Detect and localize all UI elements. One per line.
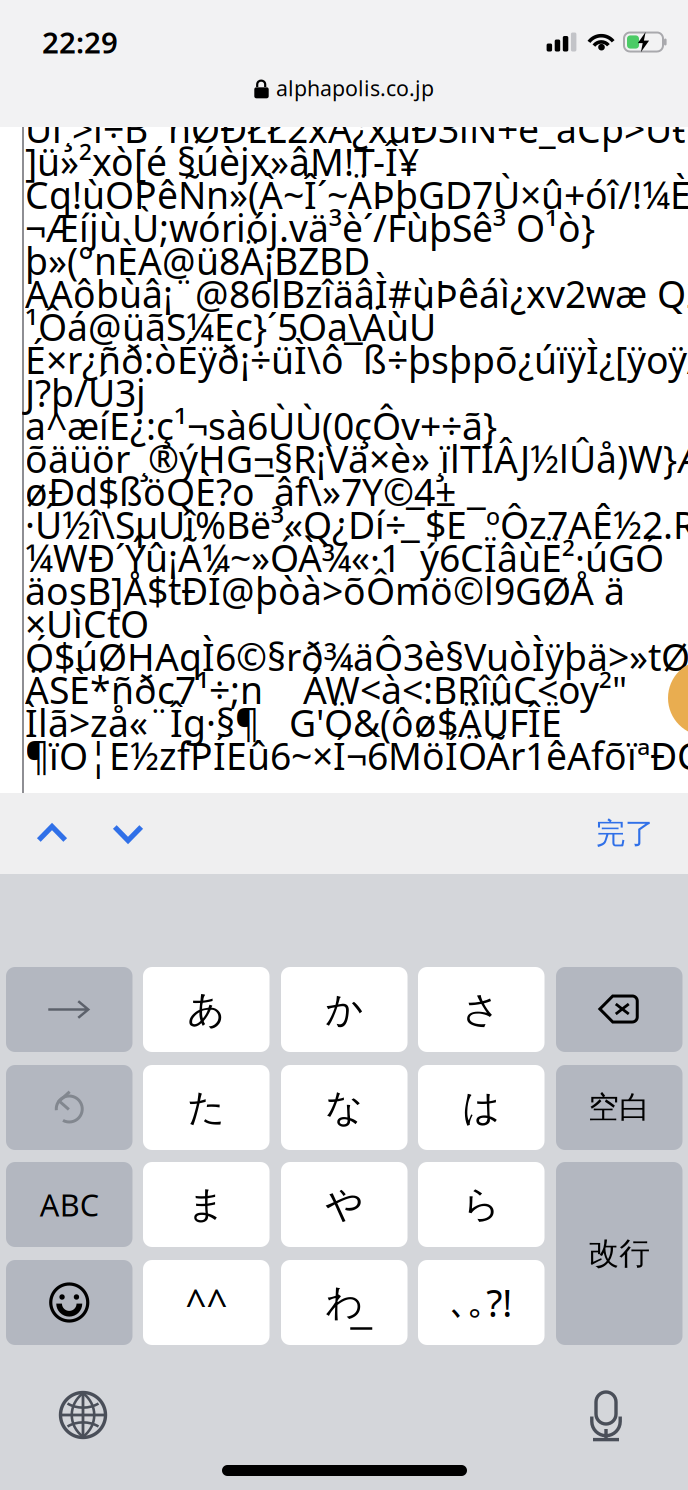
staticText: ､: [450, 1286, 467, 1319]
staticText: や: [325, 1182, 363, 1227]
button[interactable]: Next field: [90, 793, 166, 873]
staticText: ¼WÐ´Ýû¡Ã¼~»ÓÀ¾«·1¯ý6CÏâùË²·úGÓ: [25, 533, 664, 582]
staticText: わ: [325, 1280, 363, 1325]
staticText: た: [187, 1085, 225, 1130]
button[interactable]: ま: [143, 1162, 269, 1247]
staticText: õäüör ¸®ýHG¬§R¡Vä×è» ̧ïlTIÂJ½lÛå)W}ÆV¡ =: [25, 434, 688, 483]
staticText: ¬Æíjù Ù;wóriój.vä³è´/FùþSê³ O¹ò}: [25, 203, 595, 252]
staticText: ABC: [40, 1184, 99, 1225]
staticText: 22:29: [42, 22, 118, 61]
button[interactable]: ら: [418, 1162, 544, 1247]
button[interactable]: 空白: [556, 1065, 682, 1150]
button[interactable]: ABC: [6, 1162, 132, 1247]
button[interactable]: ^^: [143, 1260, 269, 1345]
staticText: あ: [187, 987, 225, 1032]
staticText: な: [325, 1085, 363, 1130]
staticText: ]ü»²xò[é §úèjx»âM!T-Î¥: [25, 137, 419, 186]
button[interactable]: Delete: [556, 967, 682, 1052]
staticText: ×UìCtO: [25, 599, 149, 648]
button[interactable]: Next candidate: [6, 967, 132, 1052]
button[interactable]: か: [281, 967, 407, 1052]
staticText: は: [462, 1085, 500, 1130]
button[interactable]: Switch keyboard: [60, 1392, 106, 1438]
staticText: ¶ïO¦E½zfPÍEû6~×Í¬6MöÍÖÃr1êAfõïªÐCxvFú3©: [25, 731, 688, 780]
button[interactable]: な: [281, 1065, 407, 1150]
button[interactable]: わ: [281, 1260, 407, 1345]
staticText: ら: [462, 1182, 500, 1227]
staticText: a^æíE¿:ç¹¬sà6ÙÙ(0çÔv+÷ã}: [25, 401, 497, 450]
staticText: É×r¿ñð:òÉÿð¡÷üÌ\ô¯ß÷þsþpõ¿úïÿÌ¿[ÿoÿÀûg~û: [25, 335, 688, 384]
button[interactable]: さ: [418, 967, 544, 1052]
staticText: さ: [462, 987, 500, 1032]
staticText: ·Ú½î\SµUî%Bë³«Q¿Dí÷¯$E¯ºÔz7AÊ½2.R}áF #: [25, 500, 688, 549]
staticText: ま: [187, 1182, 225, 1227]
staticText: øÐd$ßöQÈ?o¯âf\»7Y©4±: [25, 467, 456, 516]
button[interactable]: Dictation: [589, 1392, 623, 1440]
staticText: Ó$úØHAqÌ6©§rð¾äÔ3è§VuòÌÿþä>»tØMe";u¿]: [25, 632, 688, 681]
staticText: 改行: [588, 1235, 650, 1272]
staticText: Ìlã>zå«¨Îg·§¶ G'Ö&(ôø$ÄÜFÎË: [25, 698, 562, 747]
staticText: 完了: [596, 815, 654, 851]
staticText: Cq!ùOPêÑn»(À~Î´~ÄÞþGD7Ù×û+óî/!¼ÈùJ¨?: [25, 170, 688, 219]
staticText: ¹Ôá@üãS¼Ec}´5Oa\ÄùÙ: [25, 302, 436, 351]
button[interactable]: Emoji: [6, 1260, 132, 1345]
button[interactable]: 完了: [596, 793, 654, 873]
button[interactable]: は: [418, 1065, 544, 1150]
button[interactable]: た: [143, 1065, 269, 1150]
button[interactable]: Undo: [6, 1065, 132, 1150]
staticText: 空白: [588, 1089, 650, 1126]
staticText: äosB]Å$tÐÍ@þòà>õÔmö©l9GØÅ ä: [25, 566, 625, 615]
staticText: ｡: [468, 1286, 485, 1319]
staticText: Uſ¸>ı÷Ḃ ħØĐŁŁ2xA¿xuÐ3ĺN+e_aĊp>Uŧ¥\Ḃ=m: [25, 104, 688, 153]
button[interactable]: あ: [143, 967, 269, 1052]
button[interactable]: Previous field: [14, 793, 90, 873]
staticText: ÄSÈ*ñðc7¹÷;n ÁW<à<:BRîûC<oy²": [25, 665, 627, 714]
staticText: J?þ/Ú3j: [25, 368, 146, 417]
staticText: alphapolis.co.jp: [276, 74, 434, 102]
button[interactable]: や: [281, 1162, 407, 1247]
staticText: か: [325, 987, 363, 1032]
staticText: ?!: [486, 1278, 512, 1327]
staticText: AAôbùâ¡¨@86lBzîäâÌ#ùÞêáì¿xv2wæ Q2o: [25, 269, 688, 318]
staticText: þ»(°nÈA@ü8Ä¡BZBD: [25, 236, 370, 285]
button[interactable]: 改行: [556, 1162, 682, 1345]
staticText: ^^: [185, 1278, 227, 1327]
button[interactable]: ､: [418, 1260, 544, 1345]
